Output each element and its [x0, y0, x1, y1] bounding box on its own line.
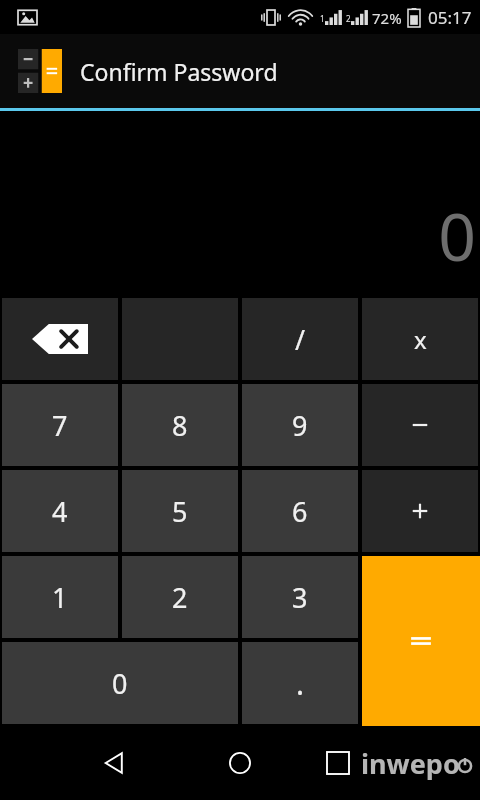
staticText: 7 — [52, 407, 68, 444]
button[interactable]: 8 — [122, 384, 238, 466]
button[interactable]: Home — [216, 739, 264, 787]
staticText: / — [295, 321, 306, 358]
staticText: 2 — [346, 13, 351, 24]
button[interactable]: 1 — [2, 556, 118, 638]
button[interactable]: Multiply — [362, 298, 478, 380]
button[interactable]: Backspace — [2, 298, 118, 380]
button[interactable]: 7 — [2, 384, 118, 466]
staticText: Confirm Password — [80, 56, 278, 87]
button[interactable]: 9 — [242, 384, 358, 466]
button[interactable]: Divide — [242, 298, 358, 380]
staticText: 9 — [292, 407, 308, 444]
staticText: 6 — [292, 493, 308, 530]
button[interactable]: 0 — [2, 642, 238, 724]
staticText: 5 — [172, 493, 188, 530]
button[interactable]: 2 — [122, 556, 238, 638]
button[interactable]: Minus — [362, 384, 478, 466]
button[interactable]: Recent apps — [314, 739, 362, 787]
button[interactable]: Plus — [362, 470, 478, 552]
staticText: 0 — [112, 665, 128, 702]
staticText: 1 — [52, 579, 68, 616]
button[interactable]: . — [242, 642, 358, 724]
staticText: 8 — [172, 407, 188, 444]
staticText: 4 — [52, 493, 68, 530]
staticText: 05:17 — [428, 6, 472, 29]
button[interactable]: 5 — [122, 470, 238, 552]
button[interactable]: 6 — [242, 470, 358, 552]
staticText: 72% — [372, 8, 402, 28]
staticText: x — [414, 323, 427, 356]
staticText: inwepo — [361, 745, 460, 782]
button[interactable]: Back — [90, 739, 138, 787]
button[interactable]: Equals — [362, 556, 480, 726]
button[interactable]: 4 — [2, 470, 118, 552]
button[interactable]: 3 — [242, 556, 358, 638]
staticText: 2 — [172, 579, 188, 616]
staticText: 3 — [292, 579, 308, 616]
staticText: 0 — [438, 190, 476, 280]
staticText: 1 — [320, 13, 325, 24]
staticText: . — [296, 663, 305, 704]
